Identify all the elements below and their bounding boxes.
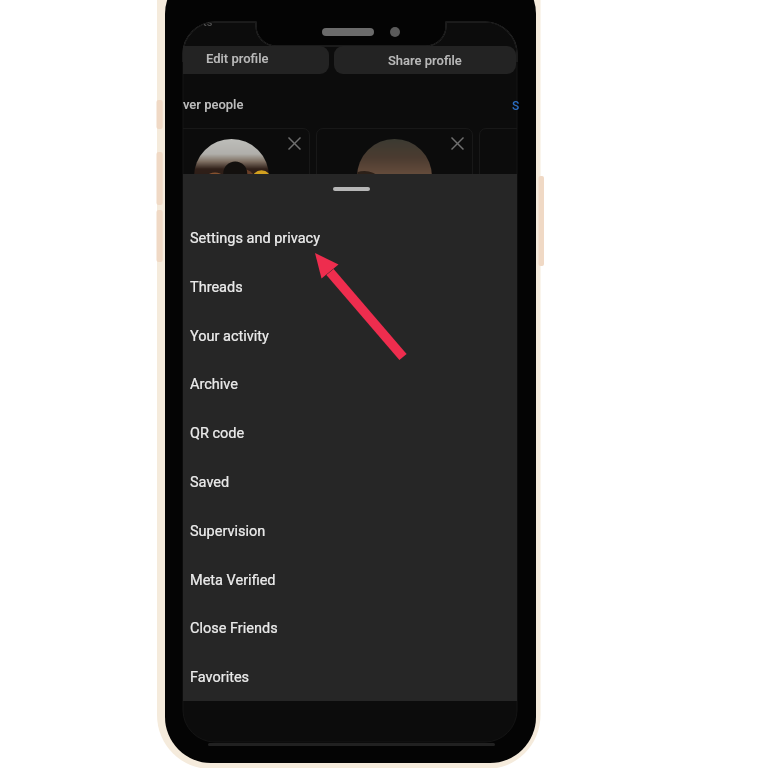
staticText: Settings and privacy [190,230,321,247]
button[interactable]: Share profile [334,46,516,74]
button[interactable]: QR code [183,409,517,457]
button[interactable]: Threads [183,263,517,311]
button[interactable]: Saved [183,458,517,506]
button[interactable]: Dismiss suggestion [316,128,473,258]
staticText: Threads [190,279,243,296]
button[interactable]: Dismiss suggestion [153,128,310,258]
staticText: Share profile [388,53,462,68]
staticText: Edit profile [206,51,269,66]
staticText: Favorites [190,669,250,686]
button[interactable]: Favorites [183,653,517,701]
button[interactable]: Archive [183,360,517,408]
button[interactable]: Supervision [183,507,517,555]
staticText: Supervision [190,523,266,540]
button[interactable]: Meta Verified [183,556,517,604]
staticText: Meta Verified [190,572,276,589]
button[interactable]: Settings and privacy [183,214,517,262]
staticText: QR code [190,425,245,442]
staticText: Saved [190,474,230,491]
staticText: Close Friends [190,620,278,637]
button[interactable]: Dismiss suggestion [444,130,471,157]
staticText: ver people [183,97,244,112]
staticText: ts [203,16,213,29]
staticText: Archive [190,376,238,393]
button[interactable]: Dismiss suggestion [281,130,308,157]
button[interactable]: Your activity [183,312,517,360]
button[interactable]: Dismiss suggestion [479,128,636,258]
button[interactable]: Close Friends [183,604,517,652]
staticText: Your activity [190,328,269,345]
button[interactable]: Edit profile [183,46,329,74]
staticText: S [512,99,520,113]
button[interactable]: S [512,99,522,115]
